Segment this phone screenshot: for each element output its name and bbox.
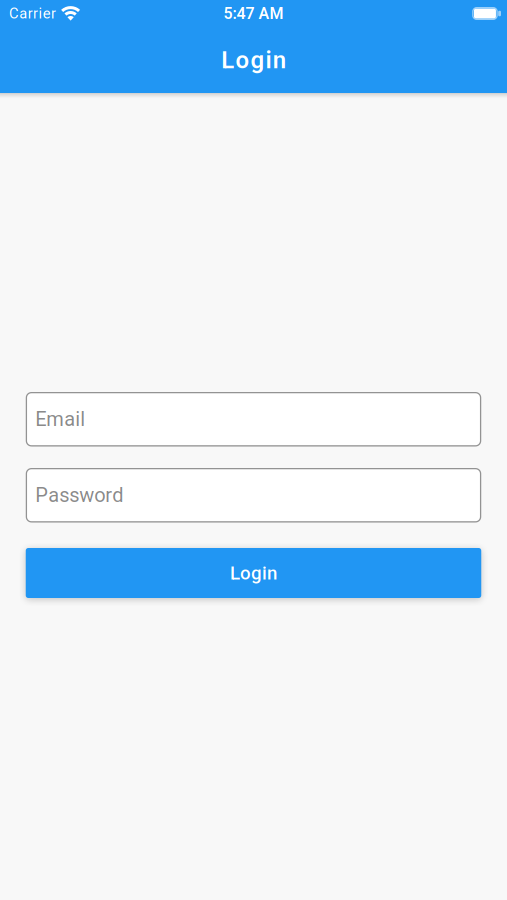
- staticText: Login: [221, 46, 286, 74]
- staticText: Email: [35, 408, 85, 431]
- textField[interactable]: Email: [26, 392, 481, 446]
- button[interactable]: Login: [26, 548, 481, 598]
- staticText: Carrier: [9, 5, 56, 22]
- staticText: 5:47 AM: [223, 4, 283, 23]
- textField[interactable]: Password: [26, 468, 481, 522]
- staticText: Login: [230, 562, 277, 584]
- staticText: Password: [35, 484, 123, 507]
